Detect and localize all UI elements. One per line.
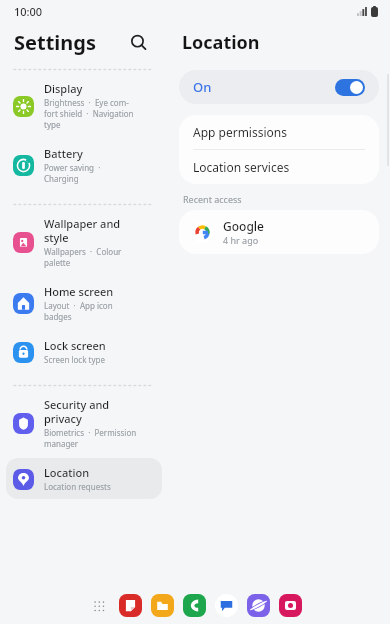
button[interactable]: Messages — [214, 593, 239, 618]
staticText: Power saving · Charging — [44, 162, 101, 184]
button[interactable]: Camera — [278, 593, 303, 618]
button[interactable]: My Files — [150, 593, 175, 618]
button[interactable]: Security and privacy — [6, 390, 162, 456]
staticText: 10:00 — [14, 4, 43, 19]
button[interactable]: Display — [6, 74, 162, 137]
staticText: Display — [44, 81, 83, 96]
staticText: 4 hr ago — [223, 234, 259, 246]
button[interactable]: Notes — [118, 593, 143, 618]
staticText: Battery — [44, 146, 83, 161]
staticText: Brightness · Eye com- fort shield · Navi… — [44, 97, 134, 130]
staticText: Location — [182, 30, 260, 55]
staticText: Recent access — [183, 193, 242, 205]
button[interactable]: Location services — [179, 150, 379, 184]
staticText: Google — [223, 218, 264, 234]
staticText: Location requests — [44, 481, 111, 492]
staticText: Home screen — [44, 284, 114, 299]
button[interactable]: On — [179, 70, 379, 104]
staticText: Wallpapers · Colour palette — [44, 246, 122, 268]
button[interactable]: Lock screen — [6, 331, 162, 372]
staticText: Security and privacy — [44, 397, 110, 426]
staticText: Layout · App icon badges — [44, 300, 113, 322]
staticText: Wallpaper and style — [44, 216, 121, 245]
staticText: Settings — [14, 29, 96, 56]
staticText: On — [193, 78, 212, 96]
button[interactable]: App permissions — [179, 115, 379, 149]
staticText: App permissions — [193, 124, 287, 140]
staticText: Location — [44, 465, 90, 480]
button[interactable]: Internet — [246, 593, 271, 618]
staticText: Lock screen — [44, 338, 106, 353]
button[interactable]: Wallpaper and style — [6, 209, 162, 275]
button[interactable]: Google — [179, 210, 379, 254]
staticText: Screen lock type — [44, 354, 105, 365]
button[interactable]: Location — [6, 458, 162, 499]
staticText: Location services — [193, 159, 290, 175]
button[interactable]: Phone — [182, 593, 207, 618]
button[interactable]: Search settings — [124, 28, 152, 56]
button[interactable]: All apps — [88, 595, 110, 617]
button[interactable]: Home screen — [6, 277, 162, 329]
staticText: Biometrics · Permission manager — [44, 427, 137, 449]
button[interactable]: Battery — [6, 139, 162, 191]
